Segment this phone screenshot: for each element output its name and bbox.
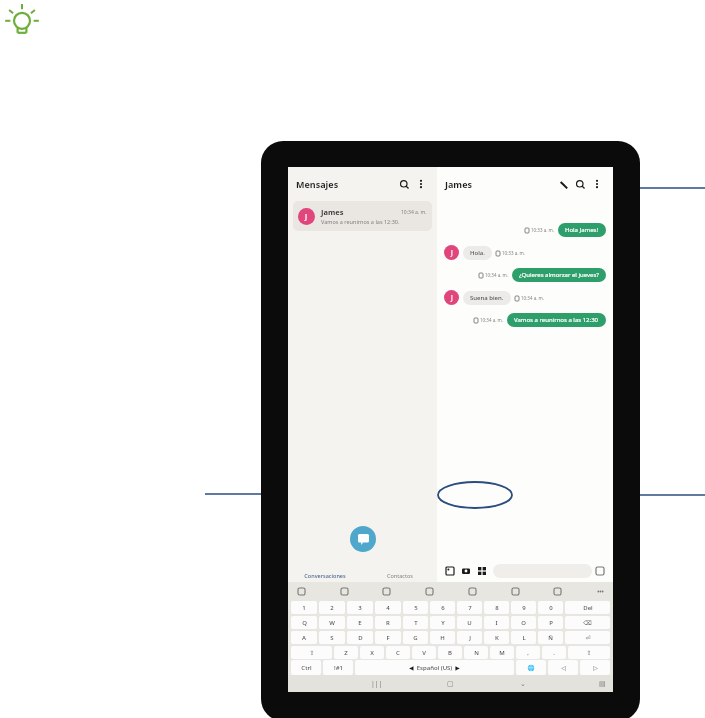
staticText: 7 [468,604,472,612]
button[interactable]: Suena bien. [463,291,511,305]
button[interactable]: Herramienta 1 [337,584,351,598]
button[interactable]: F [375,631,401,644]
button[interactable]: Nav ▤ [595,677,609,691]
button[interactable]: 0 [538,601,563,614]
staticText: D [358,634,363,642]
button[interactable]: W [319,616,345,629]
staticText: J [305,212,308,222]
button[interactable]: 3 [347,601,373,614]
button[interactable]: Hola James! [558,223,606,237]
button[interactable]: ▷ [580,660,610,675]
button[interactable]: Buscar [395,175,413,193]
button[interactable]: ◀ Español (US) ▶ [355,660,514,675]
staticText: F [386,634,390,642]
button[interactable]: 6 [430,601,455,614]
staticText: Q [302,619,307,627]
button[interactable]: D [347,631,373,644]
button[interactable]: 🌐 [516,660,546,675]
staticText: ¿Quieres almorzar el jueves? [519,271,599,279]
button[interactable]: Nav ||| [370,677,384,691]
button[interactable]: S [319,631,345,644]
button[interactable]: Nav ⌄ [516,677,530,691]
staticText: ⇧ [586,649,592,656]
button[interactable]: ⌫ [565,616,610,629]
button[interactable]: Contactos [362,568,437,582]
button[interactable]: C [386,646,410,659]
button[interactable]: M [490,646,514,659]
staticText: ▷ [593,664,598,671]
button[interactable]: J [293,201,432,231]
button[interactable]: Conversaciones [288,568,362,582]
button[interactable]: Herramienta 0 [294,584,308,598]
button[interactable]: I [484,616,509,629]
button[interactable]: Ctrl [291,660,321,675]
button[interactable]: 9 [511,601,536,614]
button[interactable]: Herramienta 3 [422,584,436,598]
button[interactable]: , [516,646,540,659]
button[interactable]: Herramienta 4 [465,584,479,598]
button[interactable]: B [438,646,462,659]
staticText: N [474,649,479,657]
button[interactable]: 5 [403,601,428,614]
button[interactable]: Buscar [572,176,589,193]
button[interactable]: K [484,631,509,644]
button[interactable]: J [457,631,482,644]
staticText: G [413,634,418,642]
button[interactable]: Q [291,616,317,629]
button[interactable]: Más opciones [589,176,605,192]
button[interactable]: Galería [442,563,458,579]
button[interactable]: ⏎ [565,631,610,644]
button[interactable]: Llamar [555,176,572,193]
staticText: 10:34 a. m. [401,209,427,216]
staticText: L [522,634,526,642]
button[interactable]: A [291,631,317,644]
button[interactable]: X [360,646,384,659]
button[interactable]: Herramienta 6 [550,584,564,598]
button[interactable]: . [542,646,566,659]
button[interactable]: Nuevo mensaje [350,526,376,552]
button[interactable]: Más opciones [413,176,429,192]
button[interactable]: E [347,616,373,629]
button[interactable]: Herramienta 2 [379,584,393,598]
button[interactable]: Vamos a reunirnos a las 12:30 [507,313,606,327]
button[interactable]: ◁ [548,660,578,675]
staticText: Ctrl [301,664,312,672]
button[interactable]: 8 [484,601,509,614]
button[interactable]: T [403,616,428,629]
staticText: Mensajes [296,178,339,190]
button[interactable]: V [412,646,436,659]
button[interactable]: ⇧ [291,646,332,659]
button[interactable]: G [403,631,428,644]
staticText: 3 [358,604,362,612]
button[interactable]: Herramienta 7 [593,584,607,598]
button[interactable]: Stickers [592,563,608,579]
button[interactable]: N [464,646,488,659]
button[interactable]: Z [334,646,358,659]
button[interactable]: Nav ▢ [443,677,457,691]
button[interactable]: 2 [319,601,345,614]
button[interactable]: Más [474,563,490,579]
button[interactable]: Herramienta 5 [508,584,522,598]
button[interactable]: H [430,631,455,644]
button[interactable]: Ñ [538,631,563,644]
button[interactable]: U [457,616,482,629]
button[interactable]: ¿Quieres almorzar el jueves? [512,268,606,282]
button[interactable]: 1 [291,601,317,614]
button[interactable]: P [538,616,563,629]
button[interactable]: Y [430,616,455,629]
staticText: R [386,619,390,627]
button[interactable]: ⇧ [568,646,610,659]
button[interactable]: R [375,616,401,629]
staticText: 4 [386,604,390,612]
button[interactable]: L [511,631,536,644]
button[interactable]: O [511,616,536,629]
button[interactable]: Cámara [458,563,474,579]
button[interactable]: Del [565,601,610,614]
button[interactable]: 4 [375,601,401,614]
button[interactable]: 7 [457,601,482,614]
button[interactable]: !#1 [323,660,353,675]
button[interactable]: Hola. [463,246,492,260]
staticText: ||| [371,679,383,689]
staticText: ◁ [561,664,566,671]
